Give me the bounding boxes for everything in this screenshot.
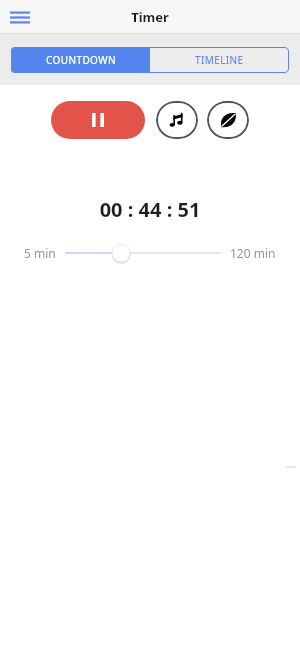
staticText: TIMELINE [195,53,244,67]
staticText: 5 min [24,245,56,261]
button[interactable]: Open navigation menu [6,3,34,31]
staticText: COUNTDOWN [46,53,116,67]
button[interactable]: TIMELINE [150,47,289,73]
button[interactable]: Select music [156,101,198,139]
staticText: 00 : 44 : 51 [0,196,300,223]
staticText: 120 min [230,245,276,261]
button[interactable]: Nature sounds [207,101,249,139]
button[interactable]: Duration slider [65,240,221,266]
button[interactable]: Pause timer [51,101,145,139]
staticText: Timer [131,8,169,26]
button[interactable]: COUNTDOWN [11,47,150,73]
